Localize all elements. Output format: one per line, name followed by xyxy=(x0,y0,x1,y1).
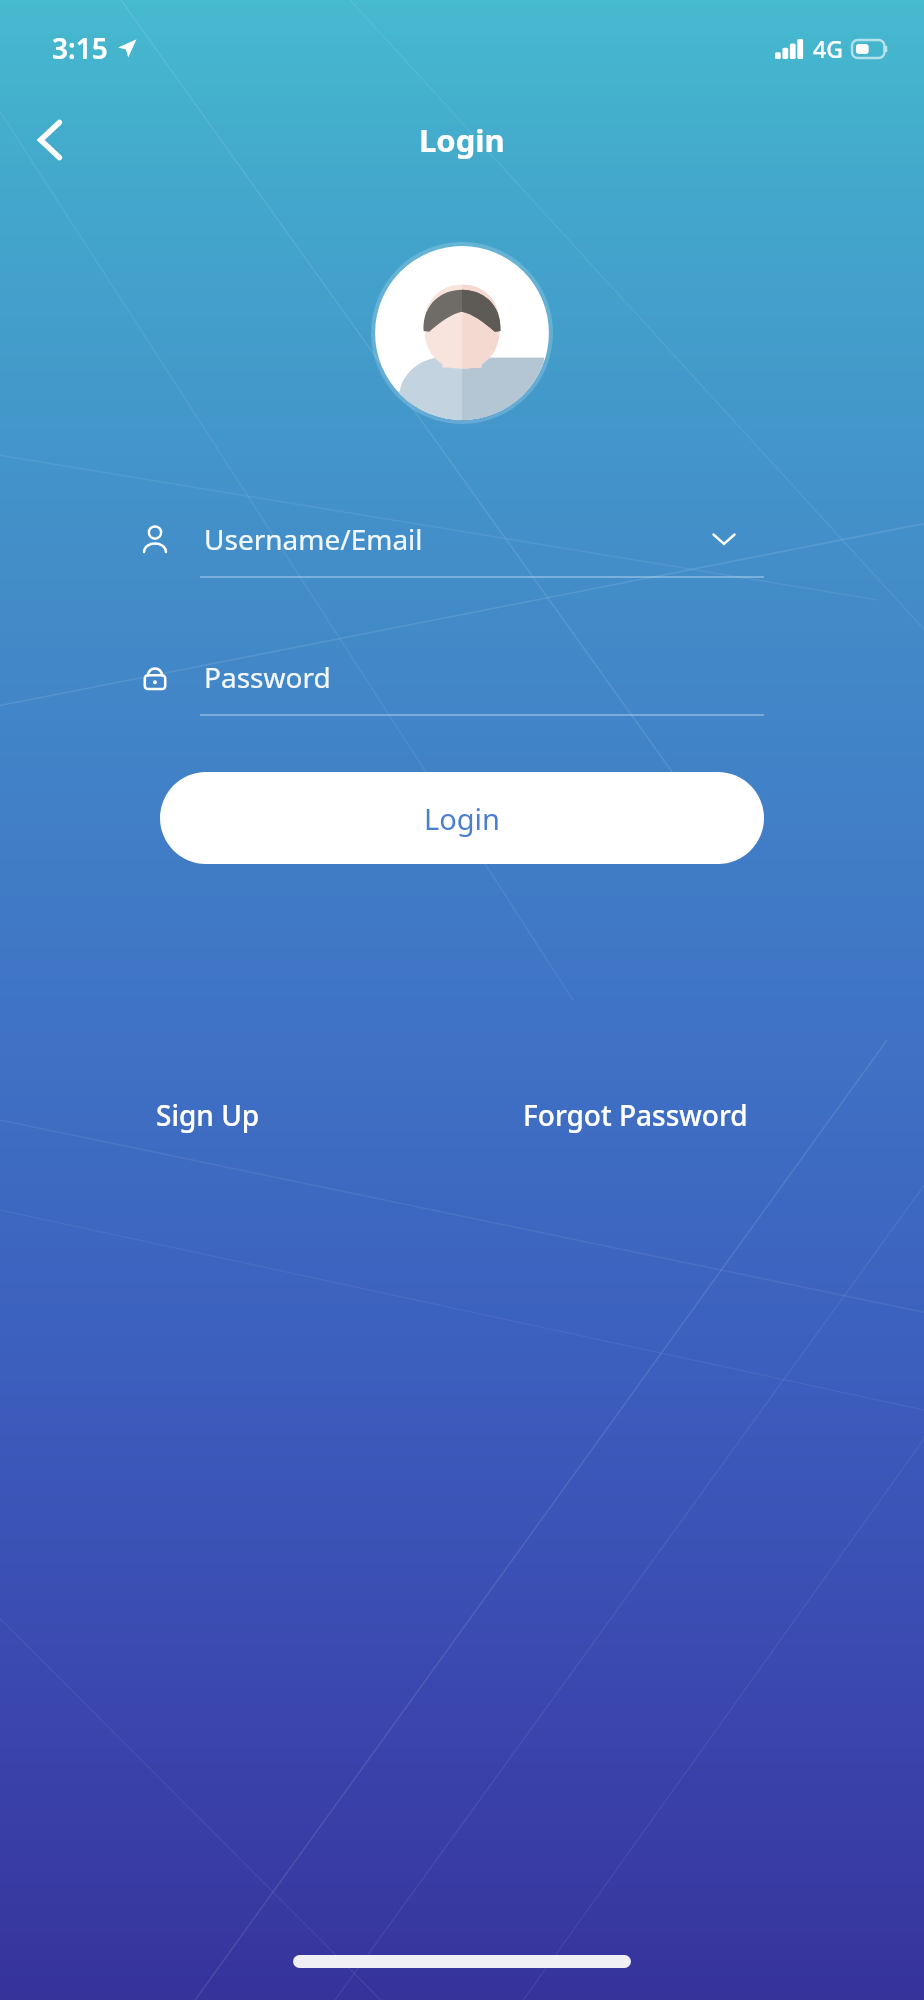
button[interactable]: Login xyxy=(160,772,764,864)
staticText: Username/Email xyxy=(204,520,423,558)
staticText: Login xyxy=(424,799,500,838)
button[interactable]: Show saved accounts xyxy=(702,517,746,561)
staticText: 3:15 xyxy=(52,29,108,67)
staticText: Sign Up xyxy=(156,1096,260,1134)
button[interactable]: Back xyxy=(18,108,82,172)
button[interactable]: Username/Email xyxy=(132,502,764,578)
button[interactable]: Forgot Password xyxy=(517,1086,754,1144)
staticText: Password xyxy=(204,658,331,696)
staticText: Forgot Password xyxy=(523,1096,748,1134)
button[interactable]: Password xyxy=(132,640,764,716)
staticText: Login xyxy=(419,119,505,161)
button[interactable]: Sign Up xyxy=(150,1086,266,1144)
staticText: 4G xyxy=(813,33,843,64)
